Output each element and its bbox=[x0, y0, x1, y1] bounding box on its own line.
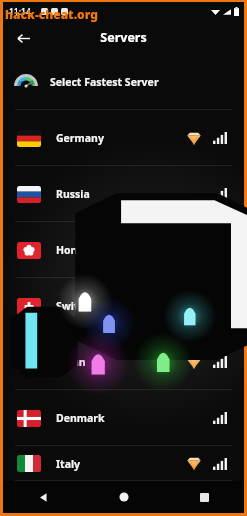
staticText: Switzerland bbox=[56, 299, 118, 313]
button[interactable]: Italy bbox=[3, 446, 244, 481]
staticText: Japan bbox=[56, 355, 86, 369]
staticText: Servers bbox=[100, 29, 147, 46]
staticText: 11:14 bbox=[9, 6, 31, 18]
button[interactable]: Switzerland bbox=[3, 278, 244, 334]
staticText: hack-cheat.org bbox=[5, 6, 98, 22]
button[interactable]: Hong Kong bbox=[3, 222, 244, 278]
staticText: Select Fastest Server bbox=[50, 75, 159, 89]
staticText: Russia bbox=[56, 187, 90, 201]
button[interactable]: Back bbox=[11, 26, 35, 50]
button[interactable]: Recent apps bbox=[164, 481, 244, 513]
button[interactable]: Russia bbox=[3, 166, 244, 222]
staticText: Italy bbox=[56, 457, 81, 471]
button[interactable]: Germany bbox=[3, 110, 244, 166]
staticText: Germany bbox=[56, 131, 104, 145]
button[interactable]: Select Fastest Server bbox=[3, 54, 244, 110]
staticText: Hong Kong bbox=[56, 243, 114, 257]
button[interactable]: Denmark bbox=[3, 390, 244, 446]
button[interactable]: Back bbox=[3, 481, 84, 513]
button[interactable]: Home bbox=[84, 481, 164, 513]
button[interactable]: Japan bbox=[3, 334, 244, 390]
staticText: Denmark bbox=[56, 411, 105, 425]
